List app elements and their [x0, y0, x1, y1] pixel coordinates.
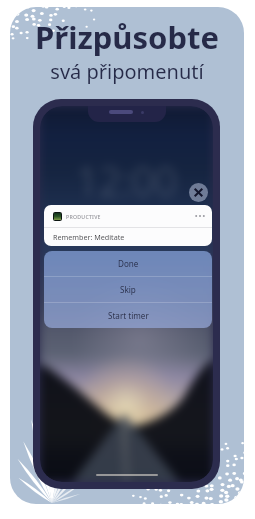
- button[interactable]: Done: [44, 251, 212, 276]
- button[interactable]: Skip: [44, 277, 212, 302]
- staticText: 12:00: [76, 153, 178, 207]
- staticText: Remember: Meditate: [53, 232, 125, 242]
- staticText: PRODUCTIVE: [66, 213, 101, 220]
- button[interactable]: Start timer: [44, 303, 212, 328]
- staticText: Přizpůsobte: [35, 16, 219, 58]
- button[interactable]: Close: [189, 183, 208, 202]
- staticText: Done: [118, 258, 139, 269]
- staticText: Skip: [120, 284, 136, 295]
- staticText: svá připomenutí: [50, 58, 204, 85]
- button[interactable]: PRODUCTIVE: [44, 205, 212, 246]
- staticText: Start timer: [108, 310, 149, 321]
